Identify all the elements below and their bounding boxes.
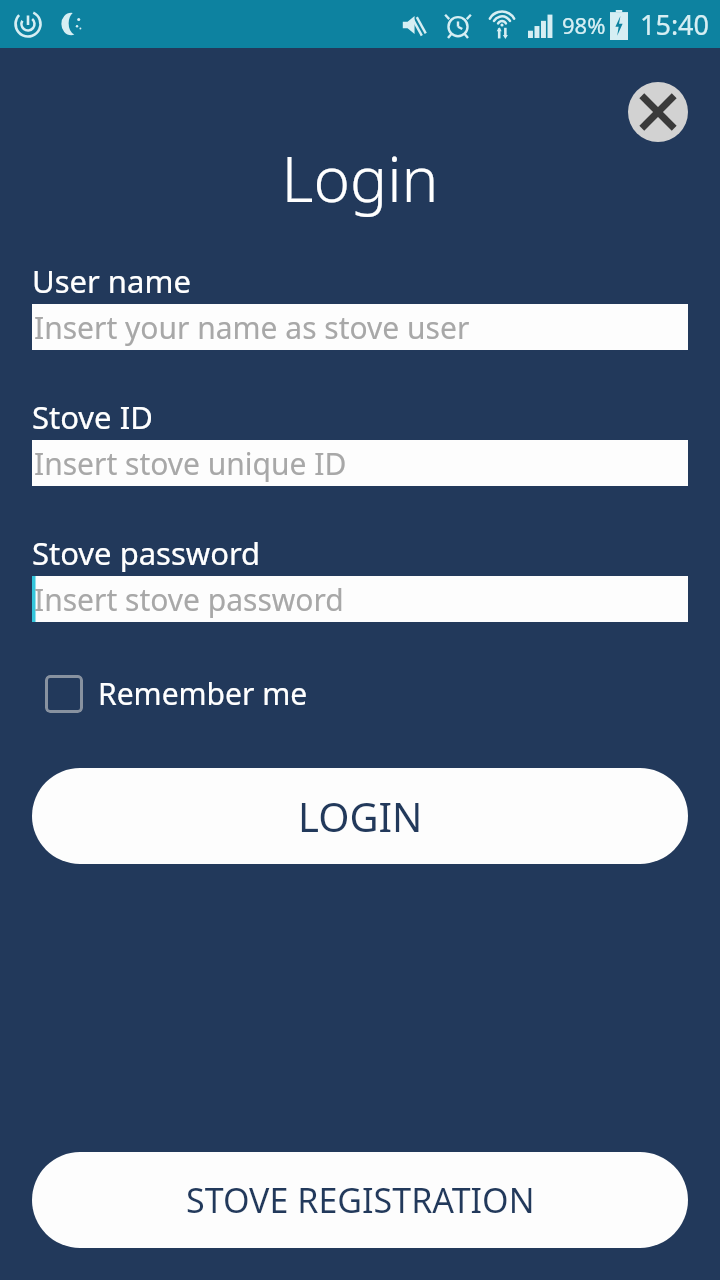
staticText: Insert your name as stove user [34,307,470,348]
staticText: Remember me [98,673,308,714]
staticText: LOGIN [298,789,423,843]
button[interactable]: STOVE REGISTRATION [32,1152,688,1248]
staticText: Stove ID [32,396,153,438]
staticText: Login [0,136,720,220]
staticText: Stove password [32,532,261,574]
button[interactable]: LOGIN [32,768,688,864]
button[interactable]: Remember me [32,665,321,722]
staticText: 98% [562,10,606,40]
staticText: STOVE REGISTRATION [186,1177,535,1223]
button[interactable]: Insert your name as stove user [32,304,688,350]
staticText: 15:40 [640,6,710,43]
button[interactable]: Close [628,82,688,142]
button[interactable]: Insert stove unique ID [32,440,688,486]
staticText: Insert stove password [34,579,344,620]
staticText: User name [32,260,191,302]
button[interactable]: Insert stove password [32,576,688,622]
staticText: Insert stove unique ID [34,443,347,484]
